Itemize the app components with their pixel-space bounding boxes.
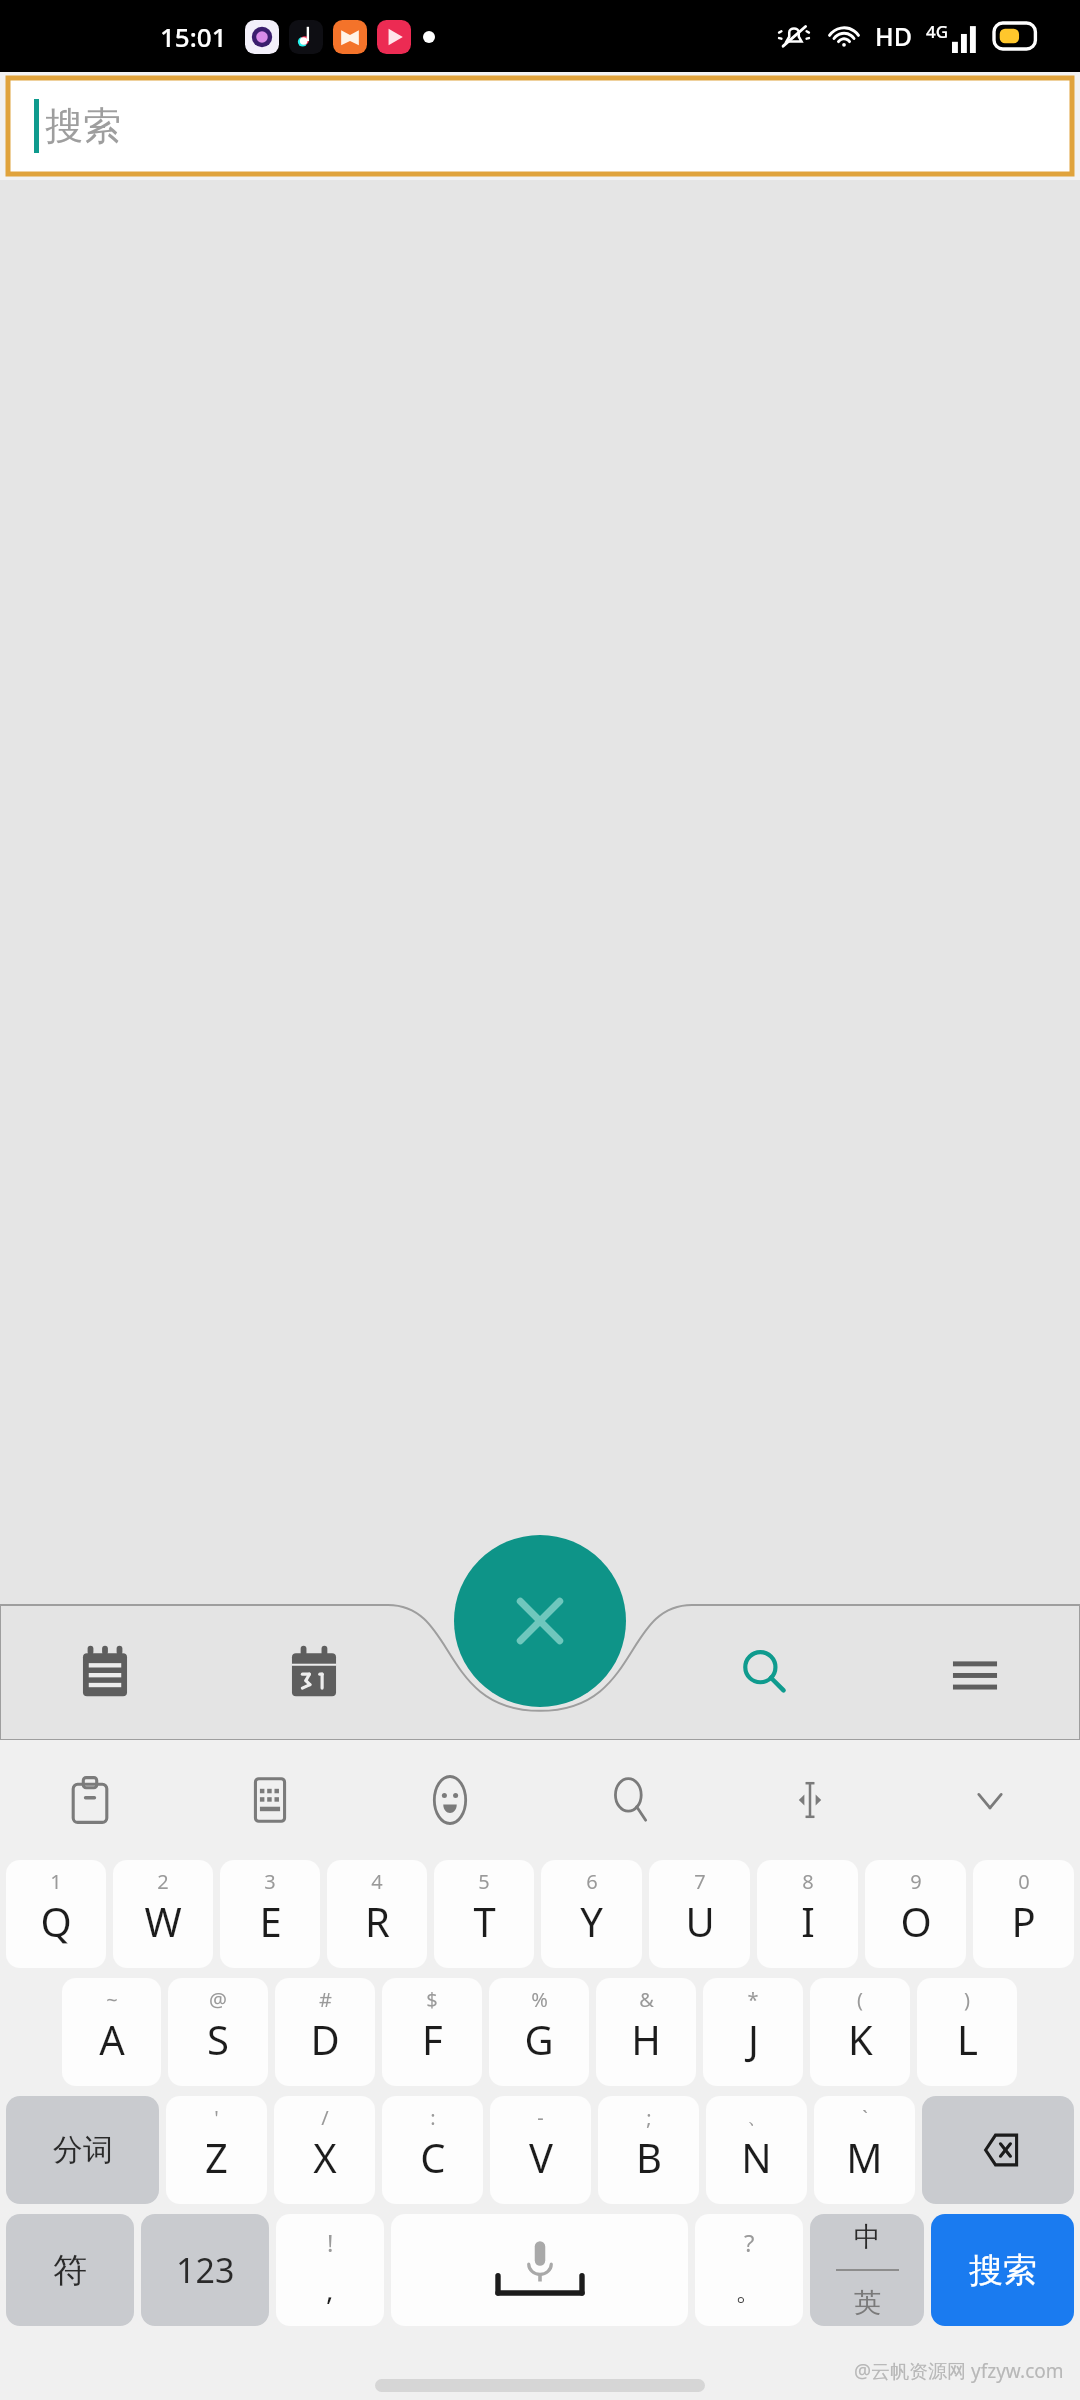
staticText: S [207, 2012, 229, 2066]
staticText: 9 [910, 1868, 922, 1895]
button[interactable]: 8 [757, 1860, 858, 1968]
button[interactable]: ~ [62, 1978, 161, 2086]
staticText: - [537, 2104, 544, 2131]
staticText: W [144, 1894, 182, 1948]
button[interactable]: ! [276, 2214, 384, 2326]
staticText: / [321, 2104, 329, 2131]
staticText: K [848, 2012, 873, 2066]
staticText: 、 [747, 2104, 767, 2129]
button[interactable]: 4 [327, 1860, 427, 1968]
button[interactable]: 1 [6, 1860, 106, 1968]
staticText: ' [214, 2104, 219, 2131]
button[interactable]: Close [454, 1535, 626, 1707]
staticText: F [422, 2012, 443, 2066]
staticText: 搜索 [45, 102, 121, 150]
button[interactable]: % [489, 1978, 589, 2086]
button[interactable]: * [703, 1978, 803, 2086]
button[interactable]: Notes [0, 1605, 209, 1740]
button[interactable]: / [274, 2096, 375, 2204]
button[interactable]: ` [814, 2096, 915, 2204]
button[interactable]: Search [540, 1740, 720, 1860]
button[interactable]: Clipboard [0, 1740, 180, 1860]
button[interactable]: ) [917, 1978, 1017, 2086]
staticText: , [326, 2270, 334, 2308]
button[interactable]: 5 [434, 1860, 534, 1968]
button[interactable]: 搜索 [931, 2214, 1074, 2326]
staticText: & [639, 1986, 654, 2013]
staticText: I [801, 1894, 815, 1948]
staticText: 6 [586, 1868, 598, 1895]
button[interactable]: $ [382, 1978, 482, 2086]
staticText: N [741, 2130, 772, 2184]
button[interactable]: Calendar [209, 1605, 419, 1740]
staticText: V [529, 2130, 553, 2184]
staticText: R [365, 1894, 390, 1948]
staticText: # [319, 1986, 332, 2013]
button[interactable]: Emoji [360, 1740, 540, 1860]
button[interactable]: 6 [541, 1860, 642, 1968]
staticText: 123 [176, 2247, 235, 2293]
staticText: HD [875, 19, 912, 53]
staticText: X [313, 2130, 337, 2184]
button[interactable]: Menu [870, 1605, 1080, 1740]
staticText: 5 [478, 1868, 490, 1895]
staticText: O [900, 1894, 932, 1948]
button[interactable]: Backspace [922, 2096, 1074, 2204]
staticText: @ [209, 1986, 227, 2013]
staticText: ? [744, 2226, 755, 2259]
button[interactable]: 3 [220, 1860, 320, 1968]
staticText: A [99, 2012, 125, 2066]
staticText: * [747, 1986, 759, 2013]
button[interactable]: 、 [706, 2096, 807, 2204]
button[interactable]: 0 [973, 1860, 1074, 1968]
staticText: 分词 [53, 2131, 113, 2169]
staticText: 1 [50, 1868, 62, 1895]
staticText: % [531, 1986, 548, 2013]
button[interactable]: 搜索 [8, 78, 1072, 174]
staticText: L [957, 2012, 978, 2066]
button[interactable]: 123 [141, 2214, 269, 2326]
button[interactable]: 9 [865, 1860, 966, 1968]
staticText: 8 [802, 1868, 814, 1895]
staticText: ( [857, 1986, 863, 2013]
button[interactable]: 中 [810, 2214, 924, 2326]
button[interactable]: Space [391, 2214, 688, 2326]
staticText: 。 [735, 2273, 763, 2308]
button[interactable]: Search [660, 1605, 870, 1740]
button[interactable]: 7 [649, 1860, 750, 1968]
button[interactable]: @ [168, 1978, 268, 2086]
button[interactable]: ( [810, 1978, 910, 2086]
staticText: $ [426, 1986, 438, 2013]
staticText: 7 [694, 1868, 706, 1895]
button[interactable]: ; [598, 2096, 699, 2204]
button[interactable]: Hide keyboard [900, 1740, 1080, 1860]
staticText: T [473, 1894, 496, 1948]
staticText: U [685, 1894, 715, 1948]
staticText: 符 [53, 2249, 87, 2292]
staticText: 4 [371, 1868, 383, 1895]
staticText: G [524, 2012, 554, 2066]
button[interactable]: # [275, 1978, 375, 2086]
staticText: M [846, 2130, 883, 2184]
staticText: ` [862, 2104, 868, 2131]
button[interactable]: & [596, 1978, 696, 2086]
staticText: Q [40, 1894, 72, 1948]
staticText: Y [580, 1894, 603, 1948]
button[interactable]: 2 [113, 1860, 213, 1968]
button[interactable]: ? [695, 2214, 803, 2326]
button[interactable]: 符 [6, 2214, 134, 2326]
button[interactable]: Keyboard layout [180, 1740, 360, 1860]
staticText: 搜索 [969, 2249, 1037, 2292]
staticText: 4G [926, 20, 949, 43]
button[interactable]: : [382, 2096, 483, 2204]
staticText: @云帆资源网 yfzyw.com [854, 2358, 1064, 2384]
staticText: J [748, 2012, 759, 2066]
button[interactable]: ' [166, 2096, 267, 2204]
button[interactable]: - [490, 2096, 591, 2204]
button[interactable]: 分词 [6, 2096, 159, 2204]
button[interactable]: Move cursor [720, 1740, 900, 1860]
staticText: ) [964, 1986, 970, 2013]
staticText: 2 [157, 1868, 169, 1895]
staticText: P [1011, 1894, 1036, 1948]
staticText: ~ [106, 1986, 118, 2013]
